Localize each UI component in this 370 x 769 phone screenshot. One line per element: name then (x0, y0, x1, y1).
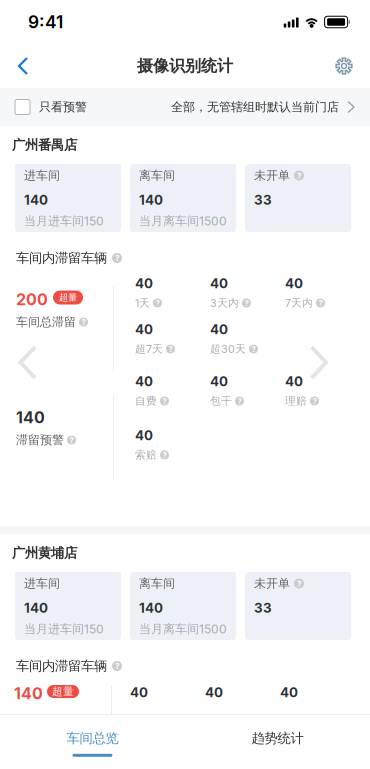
staticText: ? (237, 396, 241, 406)
button[interactable]: Back (0, 44, 48, 88)
staticText: 离车间 (139, 576, 175, 591)
staticText: 进车间 (24, 576, 60, 591)
staticText: ? (312, 396, 316, 406)
staticText: ? (115, 253, 119, 263)
staticText: 40 (135, 321, 153, 337)
staticText: 自费 (135, 394, 157, 408)
staticText: 140 (139, 600, 163, 616)
staticText: 理赔 (285, 394, 307, 408)
staticText: 140 (24, 600, 48, 616)
staticText: ? (81, 317, 85, 327)
staticText: ? (155, 298, 159, 308)
staticText: ? (115, 661, 119, 671)
staticText: 当月进车间150 (24, 621, 104, 636)
staticText: 未开单 (254, 168, 290, 183)
staticText: 40 (285, 373, 303, 389)
button[interactable]: 趋势统计 (185, 715, 370, 769)
staticText: 超7天 (135, 342, 163, 356)
staticText: 140 (139, 192, 163, 208)
staticText: ? (162, 396, 166, 406)
staticText: 9:41 (28, 11, 63, 32)
staticText: 40 (280, 684, 298, 700)
staticText: 包干 (210, 394, 232, 408)
staticText: ? (318, 298, 322, 308)
button[interactable]: 车间总览 (0, 715, 185, 769)
staticText: 滞留预警 (16, 432, 64, 447)
staticText: 1天 (135, 296, 150, 310)
staticText: ? (162, 450, 166, 460)
button[interactable]: Settings (322, 47, 370, 85)
staticText: ? (244, 298, 248, 308)
staticText: 超30天 (210, 342, 246, 356)
staticText: 摄像识别统计 (137, 56, 233, 76)
staticText: 趋势统计 (251, 730, 303, 747)
staticText: 广州番禺店 (12, 137, 77, 153)
staticText: 进车间 (24, 168, 60, 183)
staticText: 40 (135, 427, 153, 443)
staticText: 离车间 (139, 168, 175, 183)
staticText: 车间总滞留 (16, 314, 76, 329)
staticText: 40 (135, 373, 153, 389)
staticText: 40 (210, 321, 228, 337)
staticText: 40 (285, 275, 303, 291)
staticText: 40 (205, 684, 223, 700)
staticText: 超量 (52, 685, 74, 698)
staticText: ? (297, 579, 301, 588)
staticText: 车间内滞留车辆 (16, 250, 107, 266)
staticText: ? (69, 435, 73, 445)
staticText: 未开单 (254, 576, 290, 591)
staticText: ? (168, 344, 172, 354)
staticText: 40 (210, 373, 228, 389)
staticText: ? (297, 171, 301, 180)
staticText: 索赔 (135, 448, 157, 462)
staticText: 40 (210, 275, 228, 291)
staticText: 140 (24, 192, 48, 208)
staticText: 当月离车间1500 (139, 621, 227, 636)
staticText: 车间总览 (66, 730, 118, 747)
staticText: 40 (130, 684, 148, 700)
button[interactable]: Next (307, 343, 354, 382)
staticText: 车间内滞留车辆 (16, 658, 107, 674)
staticText: 当月离车间1500 (139, 213, 227, 228)
staticText: 200 (16, 290, 48, 309)
staticText: 全部，无管辖组时默认当前门店 (171, 99, 339, 114)
staticText: 当月进车间150 (24, 213, 104, 228)
staticText: 33 (254, 600, 272, 616)
button[interactable]: 全部，无管辖组时默认当前门店 (171, 88, 356, 125)
button[interactable]: Previous (0, 343, 40, 382)
staticText: 33 (254, 192, 272, 208)
staticText: 40 (135, 275, 153, 291)
staticText: 超量 (59, 292, 77, 303)
staticText: 只看预警 (39, 99, 87, 114)
staticText: 140 (16, 408, 45, 427)
button[interactable]: 只看预警 (15, 88, 87, 125)
staticText: 140 (14, 684, 43, 703)
staticText: ? (251, 344, 255, 354)
staticText: 3天内 (210, 296, 239, 310)
staticText: 广州黄埔店 (12, 545, 77, 561)
staticText: 7天内 (285, 296, 313, 310)
